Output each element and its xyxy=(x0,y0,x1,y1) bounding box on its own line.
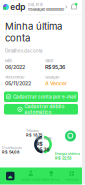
staticText: Distribuição xyxy=(2,145,22,150)
staticText: edp xyxy=(10,2,25,12)
staticText: Olá, Erik xyxy=(28,2,43,7)
staticText: 06/2022 xyxy=(5,64,25,70)
button[interactable]: Início xyxy=(0,167,20,184)
staticText: Energia elétrica xyxy=(55,151,80,156)
button[interactable]: Cadastrar conta por e-mail xyxy=(4,91,78,102)
button[interactable]: falta de luz xyxy=(41,167,61,184)
staticText: Minha última conta xyxy=(5,20,62,44)
staticText: R$ 95,36 xyxy=(36,141,49,153)
button[interactable]: Fale conosco no WhatsApp xyxy=(64,129,77,142)
staticText: Instalação 000000000 xyxy=(28,7,64,12)
staticText: Valor xyxy=(45,59,53,63)
staticText: serviços xyxy=(65,177,79,181)
staticText: R$ 95,36 xyxy=(45,64,65,70)
staticText: 05/11/2022 xyxy=(5,80,31,87)
button[interactable]: Notificações xyxy=(70,3,82,11)
staticText: A Vencer xyxy=(45,80,67,87)
staticText: minha conta xyxy=(21,177,41,181)
button[interactable]: Cadastrar débito automático xyxy=(4,104,78,114)
staticText: R$ 18,75 xyxy=(26,133,42,138)
button[interactable]: minha conta xyxy=(20,167,41,184)
staticText: Vencimento xyxy=(5,75,24,79)
staticText: Detalhes da conta xyxy=(5,48,42,53)
staticText: R$ 22,53 xyxy=(55,156,71,161)
staticText: Situação xyxy=(45,75,59,79)
staticText: Cadastrar débito automático xyxy=(24,104,64,115)
staticText: Mês xyxy=(5,59,12,63)
staticText: Valor Total xyxy=(34,136,51,141)
staticText: Cadastrar conta por e-mail xyxy=(13,94,76,99)
staticText: R$ 54,08 xyxy=(2,150,19,155)
button[interactable]: serviços xyxy=(61,167,82,184)
button[interactable]: Olá, Erik xyxy=(28,2,68,12)
staticText: falta de luz xyxy=(42,177,60,181)
button[interactable]: EDP xyxy=(0,2,25,12)
staticText: Tributos xyxy=(26,128,39,133)
